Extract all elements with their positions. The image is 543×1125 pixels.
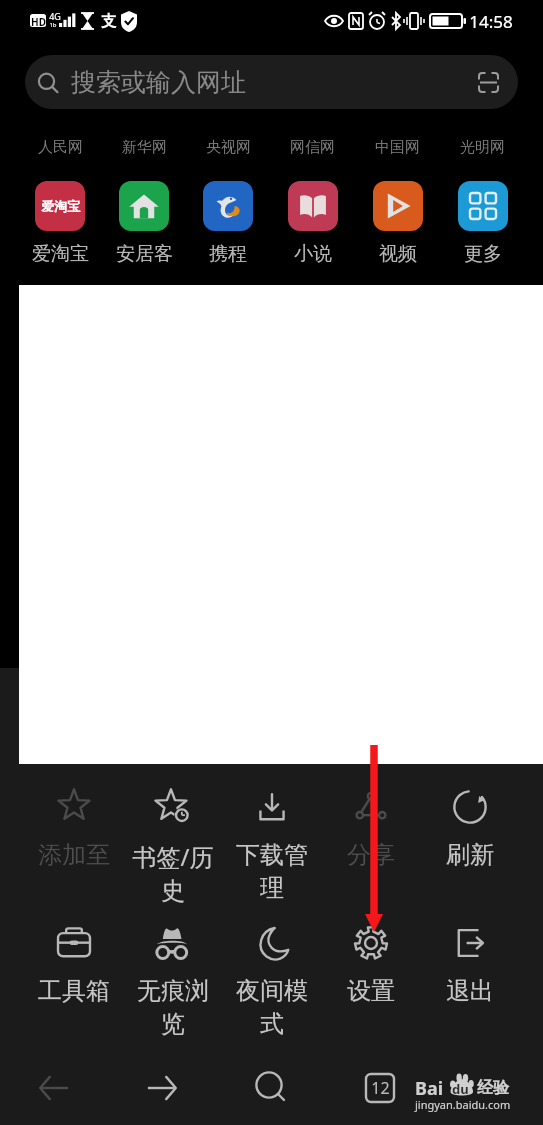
staticText: 4G [49,10,61,22]
staticText: 设置 [327,976,415,1006]
staticText: 12 [371,1077,390,1099]
button[interactable]: 设置 [321,926,420,1006]
button[interactable]: 工具箱 [24,926,123,1006]
button[interactable]: 小说 [270,181,355,266]
button[interactable]: 添加至 [24,790,123,870]
staticText: 新华网 [122,138,167,157]
staticText: 央视网 [206,138,251,157]
staticText: 书签/历史 [129,840,217,906]
staticText: 夜间模式 [228,976,316,1039]
staticText: 14:58 [469,10,513,33]
staticText: 安居客 [116,242,173,266]
staticText: 刷新 [426,840,514,870]
staticText: HD [31,15,46,29]
staticText: 无痕浏览 [129,976,217,1039]
button[interactable]: 光明网 [440,124,525,170]
button[interactable]: Back [0,1056,108,1120]
staticText: 爱淘宝 [41,198,80,214]
button[interactable]: 中国网 [355,124,440,170]
staticText: 1b [49,21,57,29]
button[interactable]: Tabs [325,1056,434,1120]
button[interactable]: 网信网 [270,124,355,170]
button[interactable]: 书签/历史 [123,790,222,906]
staticText: 工具箱 [30,976,118,1006]
button[interactable]: 无痕浏览 [123,926,222,1039]
other: Scan QR code [478,72,499,93]
button[interactable]: 人民网 [18,124,102,170]
button[interactable]: 视频 [355,181,440,266]
staticText: 支 [101,12,116,31]
staticText: 更多 [464,242,502,266]
button[interactable]: 新华网 [102,124,186,170]
button[interactable]: 分享 [321,790,420,870]
button[interactable]: 夜间模式 [222,926,321,1039]
button[interactable]: 下载管理 [222,790,321,903]
staticText: 网信网 [290,138,335,157]
staticText: jingyan.baidu.com [415,1097,511,1112]
staticText: 携程 [209,242,247,266]
staticText: 小说 [294,242,332,266]
staticText: Bai [415,1076,444,1101]
staticText: 光明网 [460,138,505,157]
button[interactable]: Search [216,1056,325,1120]
button[interactable]: 携程 [186,181,270,266]
button[interactable]: 刷新 [420,790,519,870]
staticText: 分享 [327,840,415,870]
staticText: 搜索或输入网址 [71,67,246,98]
staticText: 退出 [426,976,514,1006]
staticText: du [452,1080,469,1098]
button[interactable]: 退出 [420,926,519,1006]
button[interactable]: 爱淘宝 [18,181,102,266]
staticText: 爱淘宝 [32,242,89,266]
staticText: 添加至 [30,840,118,870]
button[interactable]: Forward [108,1056,216,1120]
button[interactable]: 更多 [440,181,525,266]
staticText: 人民网 [38,138,83,157]
staticText: 下载管理 [228,840,316,903]
staticText: 中国网 [375,138,420,157]
staticText: 经验 [477,1078,509,1098]
button[interactable]: 央视网 [186,124,270,170]
staticText: 视频 [379,242,417,266]
button[interactable]: 搜索或输入网址 [25,55,518,109]
button[interactable]: 安居客 [102,181,186,266]
